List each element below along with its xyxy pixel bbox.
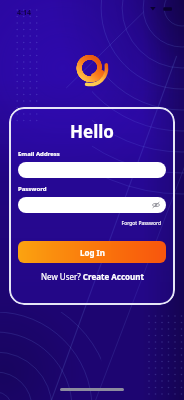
button[interactable]: Forgot Password	[18, 220, 161, 227]
button[interactable]: Log In	[18, 241, 166, 263]
staticText: Password	[18, 185, 47, 193]
staticText: New User? Create Account	[41, 271, 144, 282]
staticText: 4:14	[17, 8, 31, 18]
staticText: Log In	[80, 247, 105, 258]
staticText: Hello	[18, 120, 166, 143]
button[interactable]: Show password	[18, 197, 166, 213]
staticText: Email Address	[18, 150, 60, 158]
button[interactable]	[18, 162, 166, 178]
button[interactable]: New User? Create Account	[18, 271, 166, 282]
button[interactable]: Show password	[152, 201, 160, 209]
staticText: Forgot Password	[18, 220, 161, 227]
